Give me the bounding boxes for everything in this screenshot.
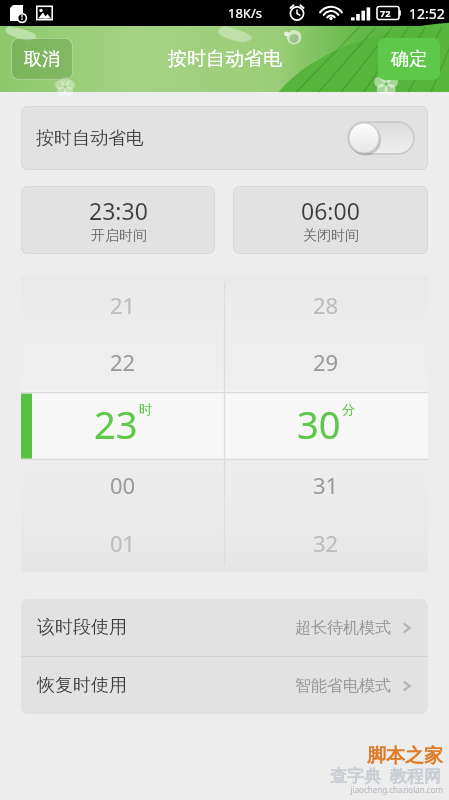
staticText: 29 — [313, 347, 339, 377]
button[interactable]: 按时自动省电开关 — [348, 122, 414, 154]
staticText: 脚本之家 — [367, 744, 443, 768]
staticText: 01 — [110, 528, 136, 558]
staticText: 00 — [110, 470, 136, 500]
staticText: 23:30 — [89, 195, 148, 226]
staticText: 12:52 — [409, 4, 445, 23]
staticText: 22 — [110, 347, 136, 377]
staticText: 查字典 教程网 — [330, 764, 441, 787]
staticText: 分 — [342, 401, 355, 417]
button[interactable]: 该时段使用 — [21, 599, 428, 656]
staticText: 28 — [313, 290, 339, 320]
staticText: 按时自动省电 — [36, 127, 144, 150]
staticText: 恢复时使用 — [37, 674, 127, 697]
staticText: 开启时间 — [91, 227, 147, 245]
staticText: 32 — [313, 528, 339, 558]
staticText: 智能省电模式 — [295, 676, 391, 696]
button[interactable]: 06:00 — [233, 186, 428, 254]
button[interactable]: 23:30 — [21, 186, 215, 254]
staticText: 关闭时间 — [303, 227, 359, 245]
staticText: 该时段使用 — [37, 616, 127, 639]
button[interactable]: 取消 — [11, 38, 73, 80]
staticText: 超长待机模式 — [295, 618, 391, 638]
staticText: 确定 — [391, 48, 427, 71]
staticText: 按时自动省电 — [168, 47, 282, 71]
staticText: 30 — [297, 398, 341, 450]
button[interactable]: 按时自动省电 — [21, 106, 428, 170]
staticText: 18K/s — [228, 4, 262, 22]
staticText: jiaocheng.chaziolan.com — [350, 784, 443, 795]
staticText: 06:00 — [301, 195, 360, 226]
button[interactable]: 恢复时使用 — [21, 657, 428, 714]
staticText: 31 — [313, 470, 339, 500]
staticText: 23 — [94, 398, 138, 450]
staticText: 时 — [139, 401, 152, 417]
button[interactable]: 28 — [224, 276, 428, 572]
button[interactable]: 21 — [21, 276, 225, 572]
staticText: 取消 — [24, 48, 60, 71]
button[interactable]: 确定 — [378, 38, 440, 80]
staticText: 72 — [380, 7, 391, 19]
staticText: 21 — [110, 290, 136, 320]
